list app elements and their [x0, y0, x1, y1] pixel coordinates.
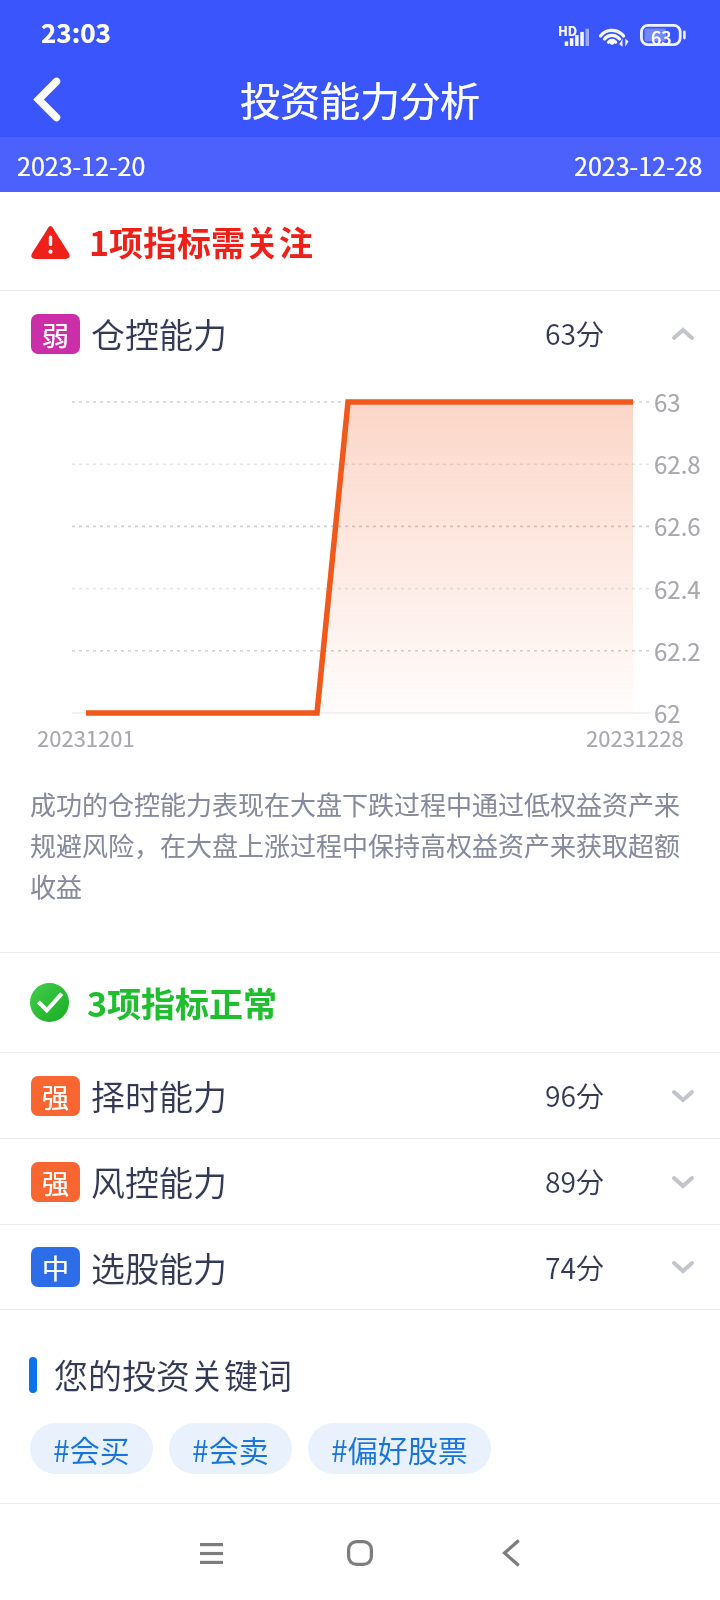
staticText: 弱	[42, 315, 69, 354]
staticText: 风控能力	[91, 1157, 227, 1206]
staticText: 62.2	[654, 633, 701, 668]
staticText: 63分	[545, 313, 605, 354]
staticText: 强	[42, 1077, 69, 1116]
staticText: 投资能力分析	[240, 70, 480, 128]
staticText: 择时能力	[91, 1071, 227, 1120]
staticText: 62	[654, 695, 681, 730]
staticText: 74分	[545, 1247, 605, 1288]
staticText: #会买	[53, 1427, 130, 1470]
staticText: 89分	[545, 1161, 605, 1202]
staticText: 2023-12-20	[17, 147, 146, 183]
staticText: 23:03	[41, 13, 111, 51]
button[interactable]: Back	[9, 61, 85, 137]
staticText: 62.6	[654, 508, 701, 543]
staticText: 强	[42, 1163, 69, 1202]
staticText: 3项指标正常	[87, 978, 278, 1027]
staticText: 选股能力	[91, 1243, 227, 1292]
staticText: 20231201	[37, 721, 135, 753]
staticText: #会卖	[192, 1427, 269, 1470]
button[interactable]: #会卖	[169, 1423, 292, 1474]
button[interactable]: 弱	[0, 291, 720, 376]
button[interactable]: Recent apps	[166, 1508, 256, 1598]
button[interactable]: Home	[315, 1508, 405, 1598]
button[interactable]: #偏好股票	[308, 1423, 491, 1474]
button[interactable]: Back	[466, 1508, 556, 1598]
staticText: 62.8	[654, 446, 701, 481]
staticText: 中	[42, 1248, 69, 1287]
staticText: 2023-12-28	[574, 147, 703, 183]
staticText: 63	[654, 384, 681, 419]
button[interactable]: 强	[0, 1053, 720, 1138]
button[interactable]: 中	[0, 1225, 720, 1309]
staticText: 96分	[545, 1075, 605, 1116]
button[interactable]: 强	[0, 1139, 720, 1224]
staticText: 仓控能力	[91, 309, 227, 358]
button[interactable]: #会买	[30, 1423, 153, 1474]
staticText: 1项指标需关注	[89, 217, 314, 266]
staticText: 62.4	[654, 571, 701, 606]
staticText: #偏好股票	[331, 1427, 468, 1470]
staticText: 20231228	[586, 721, 684, 753]
staticText: 63	[651, 24, 672, 46]
staticText: HD	[558, 21, 578, 40]
staticText: 您的投资关键词	[54, 1350, 292, 1399]
staticText: 成功的仓控能力表现在大盘下跌过程中通过低权益资产来 规避风险，在大盘上涨过程中保…	[30, 785, 681, 904]
